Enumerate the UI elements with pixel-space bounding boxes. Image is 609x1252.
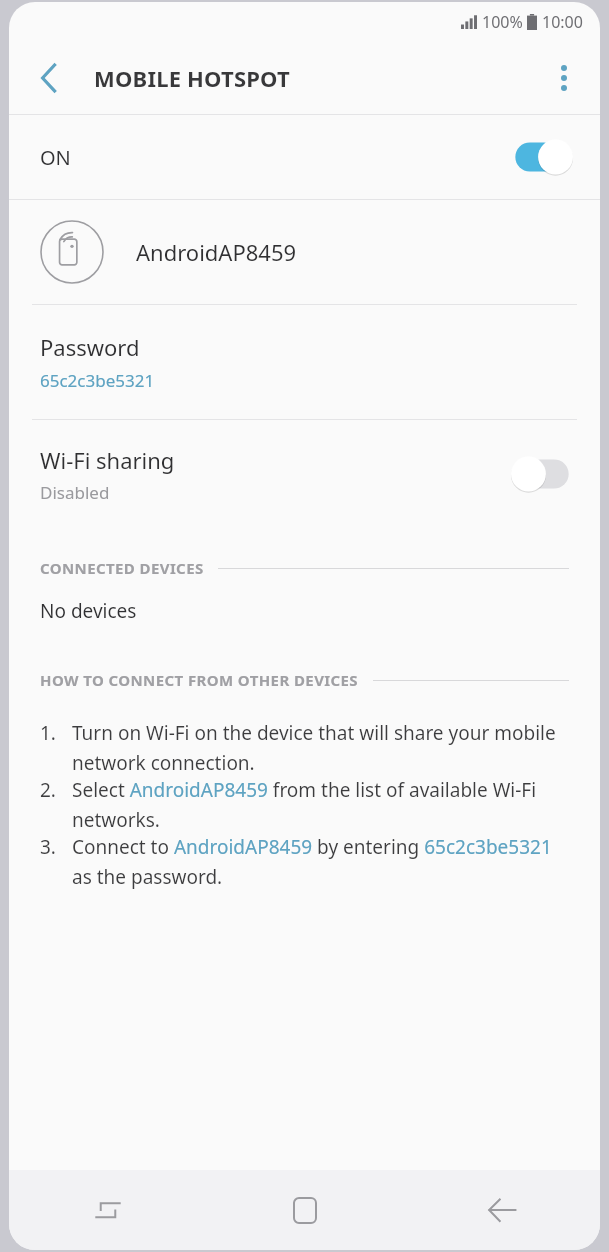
button[interactable]: Wi-Fi sharing	[9, 420, 600, 528]
staticText: ON	[40, 144, 71, 171]
button[interactable]: Back	[25, 54, 73, 102]
button[interactable]: Recents	[9, 1170, 206, 1250]
staticText: Wi-Fi sharing	[40, 445, 175, 475]
staticText: AndroidAP8459	[136, 237, 297, 267]
button[interactable]: Password	[9, 305, 600, 419]
staticText: 3.	[40, 834, 72, 860]
button[interactable]: AndroidAP8459	[9, 200, 600, 304]
staticText: Select AndroidAP8459 from the list of av…	[72, 777, 576, 832]
staticText: No devices	[40, 598, 137, 624]
staticText: CONNECTED DEVICES	[40, 558, 204, 578]
staticText: MOBILE HOTSPOT	[94, 63, 290, 93]
staticText: Disabled	[40, 481, 110, 504]
button[interactable]: More options	[540, 54, 588, 102]
button[interactable]: Back	[403, 1170, 600, 1250]
staticText: 100%	[482, 11, 523, 33]
staticText: 65c2c3be5321	[40, 369, 155, 392]
button[interactable]: Home	[206, 1170, 403, 1250]
button[interactable]: Turn off	[511, 139, 573, 175]
button[interactable]: ON	[9, 115, 600, 199]
staticText: 1.	[40, 720, 72, 746]
staticText: Password	[40, 332, 140, 362]
staticText: 2.	[40, 777, 72, 803]
staticText: 10:00	[542, 11, 583, 33]
staticText: Turn on Wi-Fi on the device that will sh…	[72, 720, 576, 775]
staticText: Connect to AndroidAP8459 by entering 65c…	[72, 834, 576, 889]
staticText: HOW TO CONNECT FROM OTHER DEVICES	[40, 670, 359, 690]
button[interactable]: Turn on	[511, 456, 573, 492]
